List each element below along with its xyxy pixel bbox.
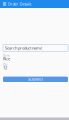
- staticText: SUBMIT: [28, 77, 43, 82]
- button[interactable]: SUBMIT: [3, 77, 68, 82]
- button[interactable]: Menu: [2, 0, 8, 8]
- staticText: Qty: [3, 63, 7, 66]
- staticText: 12: [3, 65, 7, 70]
- staticText: Item: [3, 54, 9, 57]
- staticText: Search product name: [5, 45, 42, 51]
- staticText: Rice: [3, 56, 10, 61]
- button[interactable]: Search product name: [3, 44, 68, 52]
- staticText: Order Details: [8, 1, 32, 7]
